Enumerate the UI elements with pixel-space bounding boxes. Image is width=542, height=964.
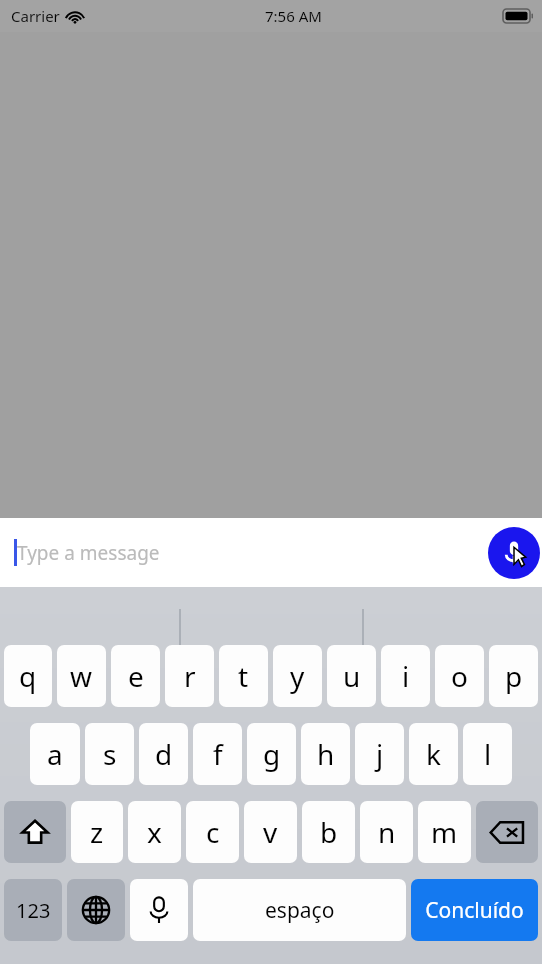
button[interactable]: z [71, 801, 123, 863]
staticText: f [213, 735, 223, 773]
button[interactable]: Backspace [476, 801, 538, 863]
staticText: m [431, 813, 458, 851]
staticText: v [263, 813, 278, 851]
staticText: s [103, 735, 117, 773]
button[interactable]: p [489, 645, 538, 707]
staticText: q [19, 657, 37, 695]
button[interactable]: x [128, 801, 181, 863]
button[interactable]: k [409, 723, 458, 785]
button[interactable]: n [360, 801, 413, 863]
button[interactable]: s [85, 723, 134, 785]
staticText: o [451, 657, 468, 695]
button[interactable]: o [435, 645, 484, 707]
staticText: w [70, 657, 93, 695]
staticText: Carrier [11, 6, 60, 26]
staticText: 7:56 AM [265, 6, 322, 26]
button[interactable]: Shift [4, 801, 66, 863]
button[interactable]: m [418, 801, 471, 863]
button[interactable]: a [30, 723, 80, 785]
button[interactable]: b [302, 801, 355, 863]
button[interactable]: r [165, 645, 214, 707]
staticText: t [238, 657, 249, 695]
button[interactable]: Dictation [130, 879, 188, 941]
staticText: x [147, 813, 162, 851]
staticText: b [320, 813, 338, 851]
button[interactable]: y [273, 645, 322, 707]
button[interactable]: j [355, 723, 404, 785]
staticText: d [155, 735, 173, 773]
staticText: u [343, 657, 361, 695]
button[interactable]: 123 [4, 879, 62, 941]
staticText: r [184, 657, 196, 695]
staticText: k [426, 735, 441, 773]
button[interactable]: e [111, 645, 160, 707]
staticText: e [128, 657, 144, 695]
button[interactable]: w [57, 645, 106, 707]
button[interactable]: q [4, 645, 52, 707]
staticText: p [505, 657, 523, 695]
button[interactable]: espaço [193, 879, 406, 941]
button[interactable]: t [219, 645, 268, 707]
button[interactable]: c [186, 801, 239, 863]
staticText: c [206, 813, 220, 851]
staticText: h [317, 735, 335, 773]
button[interactable]: u [327, 645, 376, 707]
staticText: espaço [265, 896, 335, 925]
staticText: j [376, 735, 384, 773]
button[interactable]: v [244, 801, 297, 863]
staticText: a [47, 735, 63, 773]
staticText: n [378, 813, 396, 851]
button[interactable]: i [381, 645, 430, 707]
button[interactable]: d [139, 723, 188, 785]
button[interactable]: g [247, 723, 296, 785]
button[interactable]: f [193, 723, 242, 785]
button[interactable]: h [301, 723, 350, 785]
button[interactable]: Record voice message [488, 527, 540, 579]
staticText: 123 [16, 897, 51, 924]
button[interactable]: Concluído [411, 879, 538, 941]
staticText: l [484, 735, 492, 773]
staticText: Concluído [425, 896, 524, 925]
button[interactable]: Change keyboard language [67, 879, 125, 941]
staticText: y [290, 657, 305, 695]
staticText: g [263, 735, 281, 773]
button[interactable]: Type a message [0, 518, 542, 587]
staticText: Type a message [17, 540, 160, 566]
button[interactable]: l [463, 723, 512, 785]
staticText: z [90, 813, 104, 851]
staticText: i [402, 657, 410, 695]
